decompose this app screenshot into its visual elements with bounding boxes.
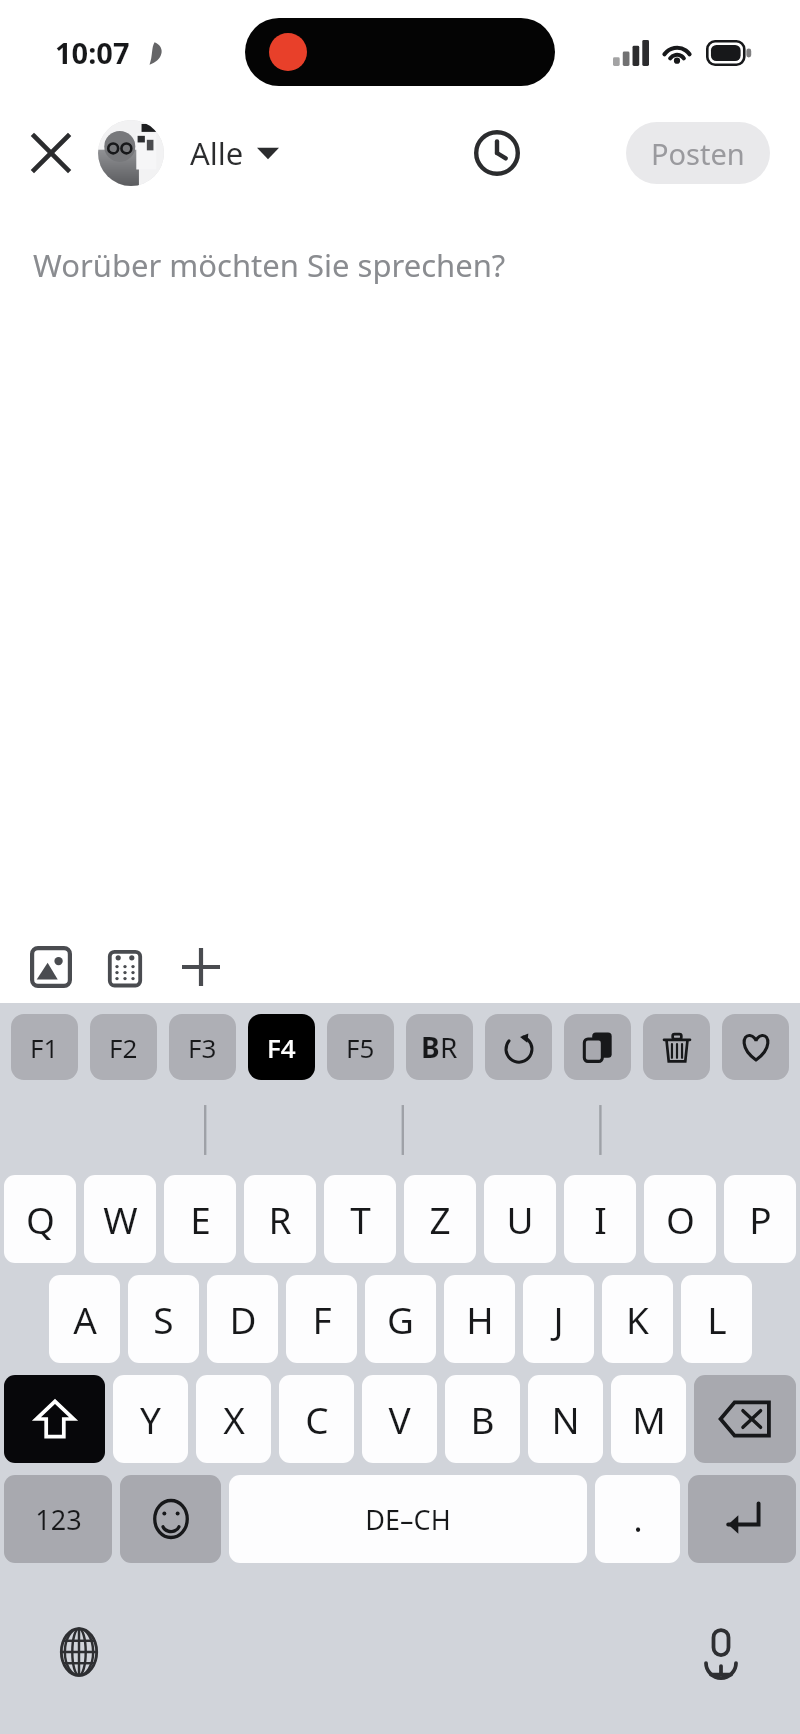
button[interactable]: Add event — [94, 936, 156, 998]
staticText: R — [440, 1028, 458, 1066]
staticText: C — [305, 1394, 329, 1444]
button[interactable]: A — [49, 1275, 120, 1363]
button[interactable]: K — [602, 1275, 673, 1363]
staticText: V — [388, 1394, 411, 1444]
staticText: F5 — [346, 1030, 375, 1065]
staticText: F1 — [30, 1030, 59, 1065]
button[interactable]: DE–CH — [229, 1475, 587, 1563]
button[interactable]: B — [445, 1375, 520, 1463]
staticText: N — [551, 1394, 580, 1444]
staticText: X — [223, 1394, 245, 1444]
button[interactable] — [0, 1091, 800, 1169]
staticText: F — [312, 1294, 332, 1344]
button[interactable]: U — [484, 1175, 556, 1263]
button[interactable]: I — [564, 1175, 636, 1263]
button[interactable]: Return — [688, 1475, 796, 1563]
staticText: Posten — [651, 134, 745, 173]
button[interactable]: Q — [4, 1175, 76, 1263]
staticText: K — [626, 1294, 649, 1344]
button[interactable]: Alle — [98, 120, 279, 186]
staticText: B — [470, 1394, 495, 1444]
button[interactable]: F1 — [11, 1014, 78, 1080]
button[interactable]: G — [365, 1275, 436, 1363]
button[interactable]: D — [207, 1275, 278, 1363]
staticText: . — [633, 1496, 643, 1542]
staticText: 123 — [35, 1501, 82, 1538]
staticText: W — [103, 1194, 138, 1244]
staticText: M — [632, 1394, 666, 1444]
button[interactable]: More options — [170, 936, 232, 998]
button[interactable]: Add photo — [20, 936, 82, 998]
button[interactable]: Y — [113, 1375, 188, 1463]
staticText: L — [707, 1294, 727, 1344]
button[interactable]: H — [444, 1275, 515, 1363]
button[interactable]: E — [164, 1175, 236, 1263]
button[interactable]: F5 — [327, 1014, 394, 1080]
staticText: H — [466, 1294, 494, 1344]
staticText: F3 — [188, 1030, 217, 1065]
staticText: Y — [140, 1394, 161, 1444]
button[interactable]: J — [523, 1275, 594, 1363]
button[interactable]: F3 — [169, 1014, 236, 1080]
staticText: Worüber möchten Sie sprechen? — [33, 244, 506, 286]
button[interactable]: V — [362, 1375, 437, 1463]
button[interactable]: . — [595, 1475, 680, 1563]
button[interactable]: Voice input — [688, 1619, 754, 1685]
staticText: B — [421, 1028, 440, 1066]
staticText: D — [229, 1294, 257, 1344]
button[interactable]: F4 — [248, 1014, 315, 1080]
button[interactable]: Schedule post — [466, 122, 528, 184]
button[interactable]: Close — [20, 122, 82, 184]
button[interactable]: Redo — [485, 1014, 552, 1080]
button[interactable]: W — [84, 1175, 156, 1263]
button[interactable]: X — [196, 1375, 271, 1463]
staticText: E — [190, 1194, 211, 1244]
staticText: I — [594, 1194, 607, 1244]
button[interactable]: F — [286, 1275, 357, 1363]
staticText: S — [153, 1294, 174, 1344]
staticText: F2 — [109, 1030, 138, 1065]
staticText: P — [749, 1194, 772, 1244]
button[interactable]: C — [279, 1375, 354, 1463]
button[interactable]: P — [724, 1175, 796, 1263]
staticText: 10:07 — [55, 33, 130, 72]
button[interactable]: F2 — [90, 1014, 157, 1080]
button[interactable]: B — [406, 1014, 473, 1080]
button[interactable]: Z — [404, 1175, 476, 1263]
button[interactable]: S — [128, 1275, 199, 1363]
button[interactable]: Delete — [643, 1014, 710, 1080]
staticText: A — [73, 1294, 97, 1344]
button[interactable]: Posten — [626, 122, 770, 184]
staticText: Z — [429, 1194, 451, 1244]
staticText: DE–CH — [365, 1501, 451, 1538]
button[interactable]: T — [324, 1175, 396, 1263]
staticText: T — [350, 1194, 371, 1244]
button[interactable]: N — [528, 1375, 603, 1463]
staticText: G — [387, 1294, 414, 1344]
button[interactable]: Backspace — [694, 1375, 796, 1463]
button[interactable]: 123 — [4, 1475, 112, 1563]
button[interactable]: L — [681, 1275, 752, 1363]
staticText: F4 — [267, 1030, 296, 1065]
staticText: U — [506, 1194, 534, 1244]
button[interactable]: Favorite — [722, 1014, 789, 1080]
staticText: Alle — [190, 132, 244, 174]
staticText: O — [666, 1194, 695, 1244]
button[interactable]: Shift — [4, 1375, 105, 1463]
button[interactable]: O — [644, 1175, 716, 1263]
button[interactable]: Emoji — [120, 1475, 221, 1563]
staticText: J — [553, 1294, 564, 1344]
staticText: R — [268, 1194, 292, 1244]
button[interactable]: Change language — [46, 1619, 112, 1685]
staticText: Q — [26, 1194, 55, 1244]
button[interactable]: R — [244, 1175, 316, 1263]
button[interactable]: Copy — [564, 1014, 631, 1080]
button[interactable]: Worüber möchten Sie sprechen? — [0, 200, 800, 931]
button[interactable]: M — [611, 1375, 686, 1463]
